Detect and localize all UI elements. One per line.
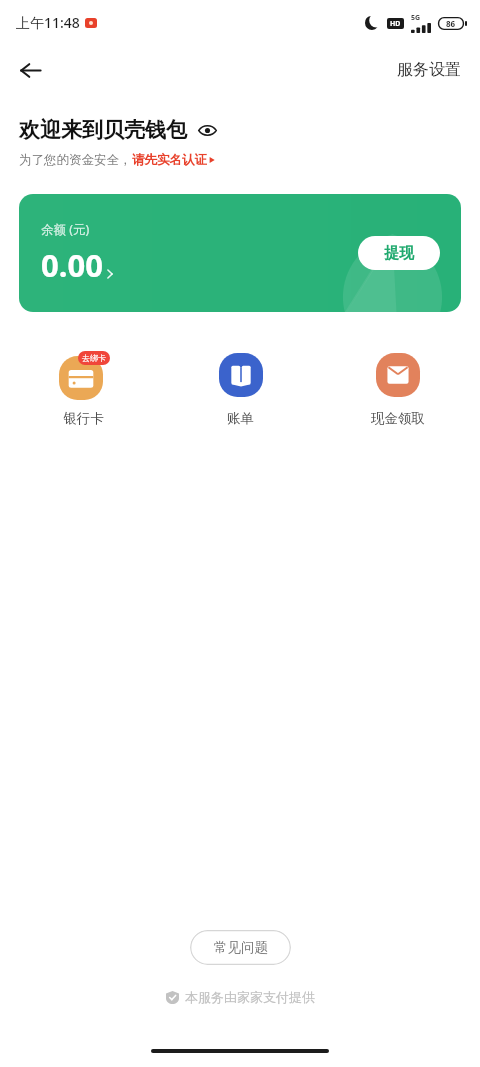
staticText: 为了您的资金安全，	[19, 152, 132, 168]
button[interactable]: 现金领取	[319, 346, 476, 431]
button[interactable]: 去绑卡	[4, 346, 162, 431]
staticText: 0.00	[41, 244, 103, 286]
staticText: 服务设置	[397, 60, 461, 80]
button[interactable]: 账单	[162, 346, 319, 431]
button[interactable]: 余额 (元)	[19, 194, 461, 312]
button[interactable]: 服务设置	[378, 50, 480, 90]
button[interactable]: 常见问题	[190, 930, 291, 965]
staticText: 本服务由家家支付提供	[185, 989, 315, 1005]
button[interactable]: Back	[8, 48, 52, 92]
staticText: HD	[390, 19, 401, 29]
staticText: 欢迎来到贝壳钱包	[19, 117, 187, 143]
staticText: 请先实名认证	[132, 152, 207, 168]
button[interactable]: Toggle balance visibility	[196, 119, 218, 141]
staticText: 余额 (元)	[41, 221, 90, 238]
staticText: 银行卡	[63, 410, 104, 427]
staticText: 提现	[384, 244, 414, 263]
staticText: 5G	[411, 13, 421, 23]
staticText: 现金领取	[371, 410, 425, 427]
staticText: 常见问题	[214, 939, 268, 956]
button[interactable]: 提现	[358, 236, 440, 270]
staticText: 86	[446, 18, 456, 29]
staticText: 上午11:48	[16, 13, 80, 32]
staticText: 去绑卡	[82, 353, 106, 363]
staticText: 账单	[227, 410, 254, 427]
button[interactable]: 请先实名认证	[132, 152, 215, 168]
